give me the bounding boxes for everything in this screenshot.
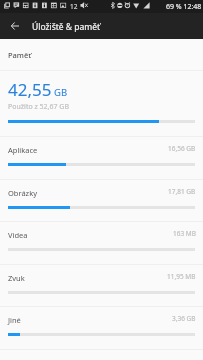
staticText: 12 <box>70 2 78 11</box>
button[interactable]: Back <box>2 13 28 39</box>
staticText: 17,81 GB <box>168 187 196 196</box>
staticText: Paměť <box>8 50 32 60</box>
staticText: 42,55 <box>8 78 52 101</box>
staticText: 69 % 12:48 <box>166 2 202 12</box>
staticText: 163 MB <box>173 229 196 238</box>
staticText: Videa <box>8 230 28 240</box>
staticText: Obrázky <box>8 188 37 198</box>
staticText: Použito z 52,67 GB <box>8 102 69 112</box>
button[interactable]: Videa <box>0 221 203 264</box>
button[interactable]: Aplikace <box>0 136 203 179</box>
staticText: 11,95 MB <box>167 272 196 281</box>
button[interactable]: Obrázky <box>0 179 203 222</box>
staticText: GB <box>54 86 68 99</box>
staticText: Úložiště & paměť <box>32 21 101 33</box>
button[interactable]: Zvuk <box>0 264 203 307</box>
staticText: Aplikace <box>8 145 38 155</box>
staticText: Jiné <box>8 315 21 325</box>
staticText: Zvuk <box>8 273 25 283</box>
staticText: 16,56 GB <box>168 144 196 153</box>
staticText: 3,36 GB <box>172 314 196 323</box>
button[interactable]: Jiné <box>0 306 203 349</box>
